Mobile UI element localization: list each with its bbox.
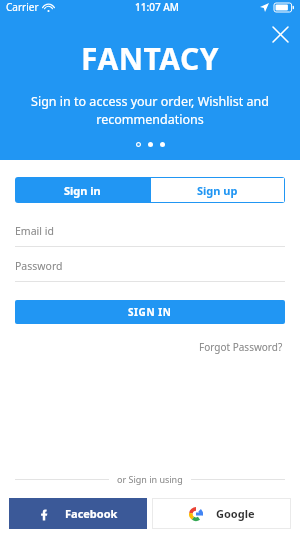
- button[interactable]: Google: [152, 498, 291, 529]
- button[interactable]: Sign in: [15, 177, 150, 203]
- button[interactable]: Sign up: [150, 177, 285, 203]
- staticText: Sign in to access your order, Wishlist a…: [8, 93, 292, 128]
- staticText: Email id: [15, 224, 54, 238]
- staticText: FANTACY: [81, 38, 219, 79]
- staticText: Forgot Password?: [199, 340, 283, 354]
- staticText: Sign up: [197, 183, 238, 198]
- staticText: Facebook: [65, 506, 118, 521]
- staticText: Password: [15, 259, 63, 273]
- button[interactable]: Facebook: [9, 498, 147, 529]
- staticText: or Sign in using: [117, 473, 183, 485]
- staticText: SIGN IN: [128, 305, 172, 319]
- button[interactable]: Password: [15, 259, 285, 282]
- button[interactable]: Forgot Password?: [197, 338, 285, 356]
- button[interactable]: Close: [268, 22, 292, 46]
- button[interactable]: SIGN IN: [15, 300, 285, 324]
- staticText: Sign in: [64, 183, 101, 198]
- button[interactable]: Email id: [15, 224, 285, 247]
- staticText: 11:07 AM: [135, 0, 179, 14]
- staticText: Google: [216, 506, 255, 521]
- staticText: Carrier: [6, 0, 39, 14]
